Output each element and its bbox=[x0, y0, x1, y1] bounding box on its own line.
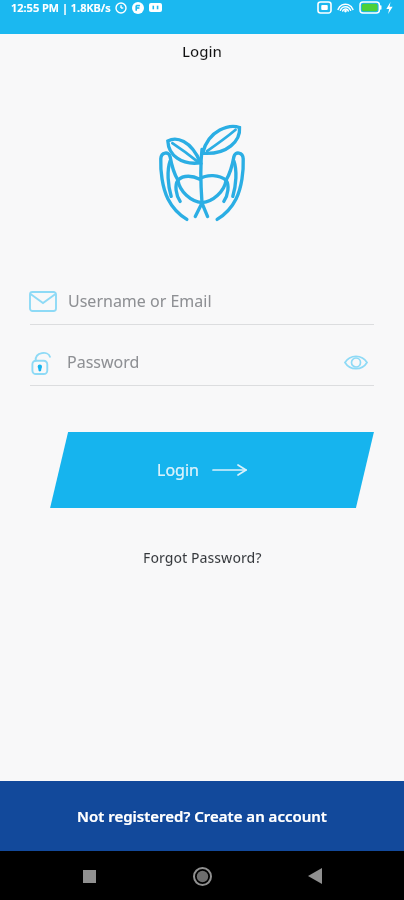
staticText: Password bbox=[67, 351, 140, 373]
staticText: Username or Email bbox=[68, 290, 212, 312]
button[interactable]: Username or Email bbox=[30, 282, 374, 320]
staticText: Forgot Password? bbox=[143, 548, 262, 567]
button[interactable]: Password bbox=[30, 349, 338, 375]
button[interactable]: Home bbox=[178, 852, 226, 900]
button[interactable]: Not registered? Create an account bbox=[0, 781, 404, 851]
staticText: Not registered? Create an account bbox=[77, 806, 327, 826]
button[interactable]: Recent apps bbox=[65, 852, 113, 900]
button[interactable]: Show password bbox=[338, 344, 374, 380]
button[interactable]: Forgot Password? bbox=[135, 544, 270, 571]
button[interactable]: Back bbox=[291, 852, 339, 900]
button[interactable]: Login bbox=[0, 432, 404, 508]
staticText: Login bbox=[157, 459, 199, 481]
staticText: 12:55 PM | 1.8KB/s bbox=[11, 0, 111, 15]
staticText: Login bbox=[182, 41, 222, 61]
